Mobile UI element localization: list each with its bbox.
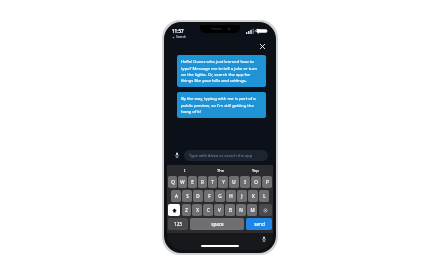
button[interactable]: A xyxy=(171,190,181,202)
staticText: L xyxy=(263,193,266,199)
button[interactable]: I xyxy=(240,176,250,188)
staticText: Search xyxy=(176,35,187,39)
staticText: O xyxy=(254,179,258,185)
staticText: By the way, typing with me is part of a … xyxy=(181,96,262,114)
button[interactable]: X xyxy=(192,204,202,216)
button[interactable]: N xyxy=(236,204,246,216)
staticText: Y xyxy=(222,179,225,185)
button[interactable]: Yep xyxy=(238,165,273,175)
staticText: T xyxy=(211,179,214,185)
button[interactable]: W xyxy=(178,176,187,188)
staticText: The xyxy=(217,168,224,173)
button[interactable]: Hello! Guess who just learned how to typ… xyxy=(177,55,266,87)
button[interactable]: send xyxy=(246,218,272,230)
staticText: J xyxy=(241,193,243,199)
button[interactable]: D xyxy=(193,190,203,202)
button[interactable]: O xyxy=(251,176,261,188)
staticText: E xyxy=(191,179,194,185)
button[interactable]: G xyxy=(215,190,225,202)
staticText: space xyxy=(211,221,224,227)
staticText: K xyxy=(252,193,255,199)
button[interactable]: L xyxy=(259,190,269,202)
button[interactable]: Shift xyxy=(168,204,180,216)
staticText: 123 xyxy=(174,221,182,227)
button[interactable]: Type with Alexa or search the app xyxy=(184,150,268,161)
button[interactable]: I xyxy=(167,165,203,175)
button[interactable]: C xyxy=(203,204,213,216)
staticText: I xyxy=(244,179,246,185)
staticText: Hello! Guess who just learned how to typ… xyxy=(181,59,262,83)
button[interactable]: M xyxy=(247,204,257,216)
staticText: send xyxy=(254,221,265,227)
button[interactable]: 123 xyxy=(168,218,188,230)
staticText: Z xyxy=(185,207,188,213)
staticText: H xyxy=(229,193,233,199)
staticText: N xyxy=(239,207,243,213)
staticText: W xyxy=(180,179,185,185)
button[interactable]: B xyxy=(225,204,235,216)
staticText: G xyxy=(218,193,222,199)
staticText: 11:57 xyxy=(172,28,184,34)
staticText: I xyxy=(184,168,186,173)
staticText: B xyxy=(229,207,232,213)
button[interactable]: T xyxy=(208,176,217,188)
staticText: D xyxy=(196,193,200,199)
staticText: P xyxy=(266,179,269,185)
button[interactable]: P xyxy=(262,176,272,188)
button[interactable]: E xyxy=(188,176,197,188)
button[interactable]: Y xyxy=(218,176,228,188)
button[interactable]: By the way, typing with me is part of a … xyxy=(177,92,266,118)
staticText: U xyxy=(232,179,236,185)
button[interactable]: Backspace xyxy=(259,204,272,216)
staticText: A xyxy=(175,193,178,199)
staticText: Q xyxy=(171,179,175,185)
staticText: R xyxy=(201,179,204,185)
button[interactable]: space xyxy=(190,218,244,230)
staticText: Yep xyxy=(252,168,259,173)
button[interactable]: H xyxy=(226,190,236,202)
staticText: S xyxy=(186,193,189,199)
button[interactable]: R xyxy=(198,176,207,188)
button[interactable]: Close xyxy=(257,41,267,51)
button[interactable]: The xyxy=(203,165,238,175)
staticText: X xyxy=(196,207,199,213)
staticText: V xyxy=(218,207,221,213)
button[interactable]: F xyxy=(204,190,214,202)
button[interactable]: Q xyxy=(168,176,177,188)
staticText: M xyxy=(250,207,255,213)
button[interactable]: S xyxy=(182,190,192,202)
staticText: C xyxy=(207,207,210,213)
button[interactable]: Voice input xyxy=(172,150,182,160)
staticText: F xyxy=(208,193,211,199)
button[interactable]: V xyxy=(214,204,224,216)
staticText: Type with Alexa or search the app xyxy=(189,153,253,158)
button[interactable]: U xyxy=(229,176,239,188)
button[interactable]: Z xyxy=(182,204,191,216)
button[interactable]: Dictate xyxy=(259,234,268,243)
button[interactable]: K xyxy=(248,190,258,202)
button[interactable]: J xyxy=(237,190,247,202)
